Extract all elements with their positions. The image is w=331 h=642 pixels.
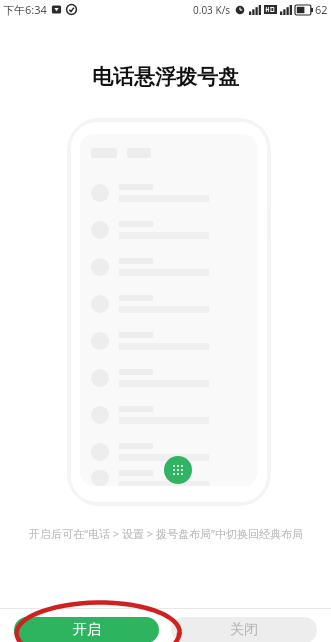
staticText: 电话悬浮拨号盘 (92, 64, 239, 90)
staticText: 开启后可在“电话 > 设置 > 拨号盘布局”中切换回经典布局 (29, 526, 303, 541)
button[interactable]: Open dialpad (164, 456, 192, 484)
staticText: 0.03 K/s (193, 3, 231, 17)
staticText: 62 (315, 2, 328, 17)
button[interactable]: 关闭 (171, 617, 317, 642)
staticText: 关闭 (230, 621, 258, 639)
staticText: 开启 (73, 621, 101, 639)
button[interactable]: 开启 (14, 617, 159, 642)
staticText: 下午6:34 (3, 2, 47, 17)
